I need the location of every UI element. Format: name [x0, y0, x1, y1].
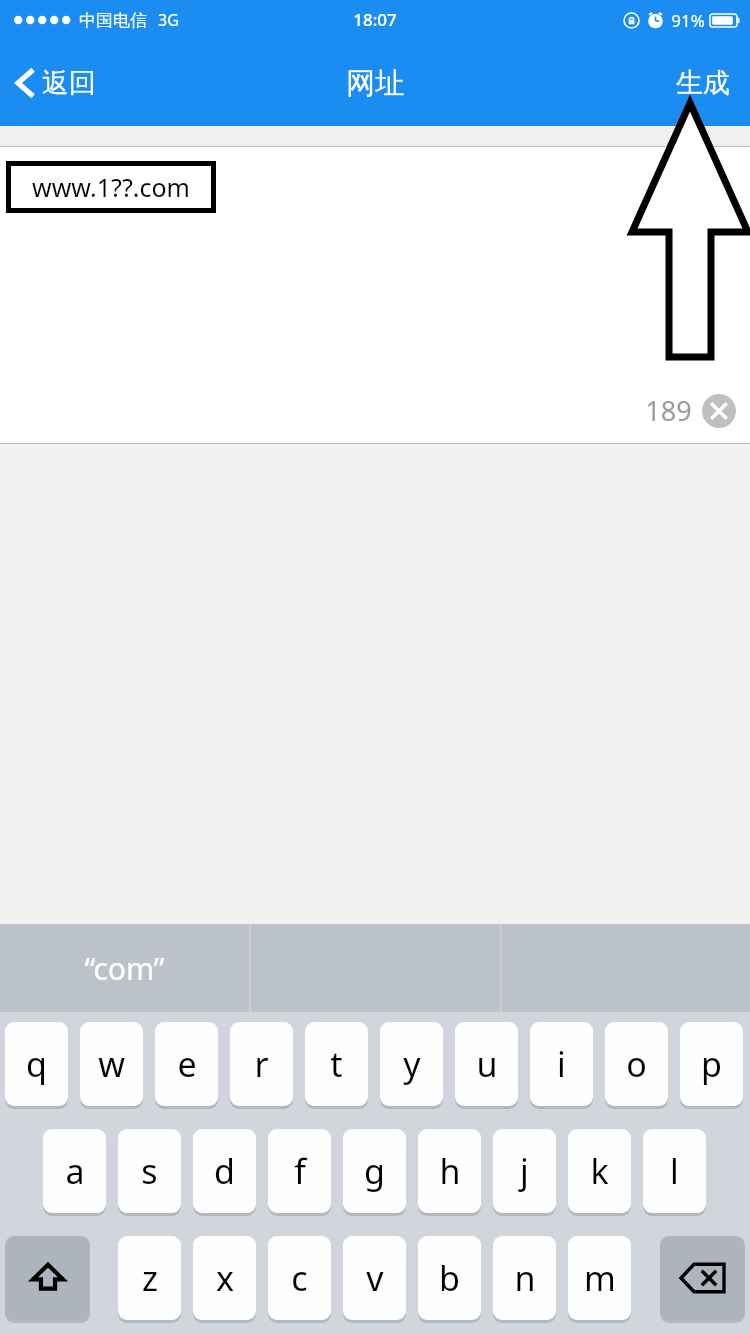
- staticText: m: [584, 1255, 616, 1301]
- staticText: 返回: [42, 66, 96, 100]
- button[interactable]: e: [155, 1022, 218, 1106]
- button[interactable]: g: [343, 1129, 406, 1213]
- button[interactable]: p: [680, 1022, 743, 1106]
- button[interactable]: k: [568, 1129, 631, 1213]
- staticText: q: [26, 1041, 47, 1087]
- button[interactable]: n: [493, 1236, 556, 1320]
- button[interactable]: “com”: [0, 924, 249, 1012]
- button[interactable]: Shift: [5, 1236, 90, 1320]
- staticText: d: [214, 1148, 235, 1194]
- button[interactable]: h: [418, 1129, 481, 1213]
- staticText: 网址: [346, 65, 404, 102]
- staticText: “com”: [84, 948, 165, 989]
- staticText: 生成: [676, 66, 730, 100]
- button[interactable]: Backspace: [660, 1236, 745, 1320]
- button[interactable]: a: [43, 1129, 106, 1213]
- staticText: 189: [645, 392, 692, 429]
- staticText: o: [626, 1041, 647, 1087]
- button[interactable]: u: [455, 1022, 518, 1106]
- staticText: 3G: [158, 9, 179, 31]
- staticText: u: [476, 1041, 498, 1087]
- staticText: x: [216, 1255, 234, 1301]
- staticText: w: [98, 1041, 125, 1087]
- staticText: j: [520, 1148, 529, 1194]
- staticText: g: [364, 1148, 385, 1194]
- staticText: 中国电信: [79, 10, 147, 31]
- staticText: b: [439, 1255, 460, 1301]
- button[interactable]: 返回: [0, 54, 114, 112]
- staticText: c: [291, 1255, 308, 1301]
- staticText: s: [141, 1148, 158, 1194]
- button[interactable]: b: [418, 1236, 481, 1320]
- button[interactable]: x: [193, 1236, 256, 1320]
- button[interactable]: c: [268, 1236, 331, 1320]
- button[interactable]: z: [118, 1236, 181, 1320]
- button[interactable]: m: [568, 1236, 631, 1320]
- staticText: 91%: [671, 9, 705, 32]
- button[interactable]: v: [343, 1236, 406, 1320]
- staticText: t: [330, 1041, 343, 1087]
- staticText: v: [366, 1255, 384, 1301]
- staticText: k: [590, 1148, 609, 1194]
- staticText: 18:07: [353, 8, 397, 31]
- staticText: a: [65, 1148, 85, 1194]
- staticText: h: [439, 1148, 461, 1194]
- button[interactable]: l: [643, 1129, 706, 1213]
- staticText: l: [670, 1148, 679, 1194]
- button[interactable]: i: [530, 1022, 593, 1106]
- button[interactable]: s: [118, 1129, 181, 1213]
- staticText: www.1??.com: [32, 170, 190, 204]
- button[interactable]: j: [493, 1129, 556, 1213]
- button[interactable]: o: [605, 1022, 668, 1106]
- button[interactable]: t: [305, 1022, 368, 1106]
- staticText: n: [514, 1255, 536, 1301]
- staticText: y: [403, 1041, 421, 1087]
- button[interactable]: Clear text: [702, 394, 736, 428]
- button[interactable]: r: [230, 1022, 293, 1106]
- staticText: r: [254, 1041, 269, 1087]
- button[interactable]: d: [193, 1129, 256, 1213]
- button[interactable]: q: [5, 1022, 68, 1106]
- button[interactable]: f: [268, 1129, 331, 1213]
- staticText: z: [142, 1255, 158, 1301]
- button[interactable]: w: [80, 1022, 143, 1106]
- staticText: f: [294, 1148, 306, 1194]
- staticText: i: [557, 1041, 566, 1087]
- button[interactable]: y: [380, 1022, 443, 1106]
- staticText: p: [701, 1041, 722, 1087]
- staticText: e: [177, 1041, 197, 1087]
- button[interactable]: 生成: [656, 52, 750, 114]
